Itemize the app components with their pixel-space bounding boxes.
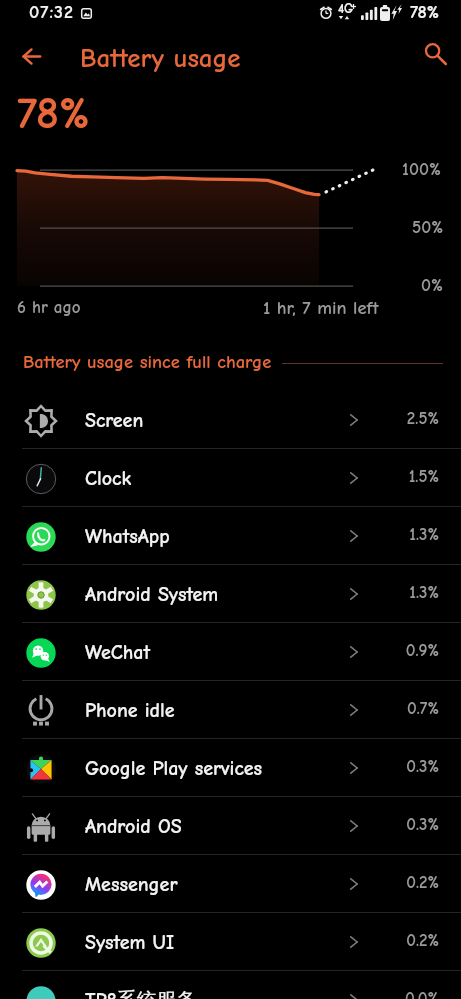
staticText: 0.0% bbox=[394, 989, 439, 999]
button[interactable]: Clock bbox=[0, 449, 461, 507]
staticText: Battery usage since full charge bbox=[23, 351, 272, 372]
staticText: 78% bbox=[410, 2, 440, 23]
staticText: 0% bbox=[421, 275, 443, 295]
staticText: Battery usage bbox=[80, 43, 241, 74]
staticText: 07:32 bbox=[29, 2, 74, 23]
staticText: 6 hr ago bbox=[17, 298, 81, 318]
staticText: Screen bbox=[85, 409, 144, 432]
staticText: 0.7% bbox=[394, 699, 439, 719]
button[interactable]: Android OS bbox=[0, 797, 461, 855]
staticText: Phone idle bbox=[85, 699, 175, 722]
staticText: 1.3% bbox=[394, 583, 439, 603]
staticText: 1.5% bbox=[394, 467, 439, 487]
button[interactable]: Search bbox=[414, 33, 454, 73]
staticText: System UI bbox=[85, 931, 174, 954]
button[interactable]: WeChat bbox=[0, 623, 461, 681]
button[interactable]: Android System bbox=[0, 565, 461, 623]
staticText: Android OS bbox=[85, 815, 182, 838]
button[interactable]: Phone idle bbox=[0, 681, 461, 739]
staticText: WeChat bbox=[85, 641, 151, 664]
button[interactable]: WhatsApp bbox=[0, 507, 461, 565]
staticText: 0.2% bbox=[394, 931, 439, 951]
staticText: 0.3% bbox=[394, 815, 439, 835]
staticText: 1.3% bbox=[394, 525, 439, 545]
button[interactable]: Back bbox=[9, 34, 53, 78]
staticText: 4G bbox=[338, 1, 354, 16]
staticText: Clock bbox=[85, 467, 132, 490]
staticText: Messenger bbox=[85, 873, 178, 896]
staticText: 0.9% bbox=[394, 641, 439, 661]
staticText: 0.3% bbox=[394, 757, 439, 777]
staticText: 100% bbox=[402, 159, 441, 179]
button[interactable]: TP8系统服务 bbox=[0, 971, 461, 999]
staticText: 78% bbox=[17, 87, 90, 139]
button[interactable]: Google Play services bbox=[0, 739, 461, 797]
staticText: 50% bbox=[412, 217, 444, 237]
staticText: TP8系统服务 bbox=[85, 988, 197, 999]
staticText: 1 hr, 7 min left bbox=[263, 297, 379, 318]
staticText: 0.2% bbox=[394, 873, 439, 893]
staticText: WhatsApp bbox=[85, 525, 170, 548]
staticText: Google Play services bbox=[85, 757, 263, 780]
button[interactable]: System UI bbox=[0, 913, 461, 971]
staticText: 2.5% bbox=[394, 409, 439, 429]
button[interactable]: Messenger bbox=[0, 855, 461, 913]
button[interactable]: Screen bbox=[0, 391, 461, 449]
staticText: Android System bbox=[85, 583, 219, 606]
